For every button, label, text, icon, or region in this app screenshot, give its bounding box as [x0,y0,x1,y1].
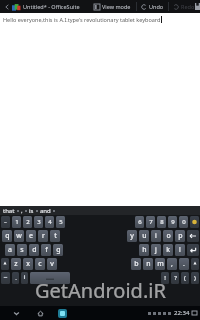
button[interactable]: e [26,230,36,242]
button[interactable]: z [11,258,21,270]
staticText: 8 [160,218,164,226]
staticText: j [155,245,157,255]
staticText: . [15,274,17,282]
button[interactable]: 3 [34,216,43,228]
staticText: ~ [4,219,7,226]
button[interactable]: u [139,230,149,242]
button[interactable]: 9 [168,216,177,228]
button[interactable]: s [17,244,27,256]
button[interactable]: t [50,230,60,242]
button[interactable]: r [38,230,48,242]
button[interactable]: . [179,258,189,270]
button[interactable]: Undo [141,3,164,10]
button[interactable]: y [127,230,137,242]
button[interactable]: 2 [23,216,32,228]
button[interactable]: Save [195,1,200,12]
staticText: ! [164,274,166,282]
staticText: , [21,207,23,215]
button[interactable]: o [163,230,173,242]
staticText: b [134,259,139,269]
button[interactable]: 4 [45,216,54,228]
staticText: 6 [138,218,142,226]
button[interactable]: g [53,244,63,256]
button[interactable]: ~ [1,216,10,228]
button[interactable]: m [155,258,165,270]
button[interactable]: and [40,207,51,215]
button[interactable]: 6 [135,216,144,228]
staticText: v [50,259,54,269]
button[interactable]: 1 [12,216,21,228]
button[interactable]: ? [171,272,179,284]
button[interactable]: is [29,207,34,215]
button[interactable]: . [12,272,19,284]
button[interactable]: d [29,244,39,256]
staticText: Hello everyone,this is A.I.type's revolu… [3,16,161,23]
staticText: , [171,259,173,269]
button[interactable]: l [175,244,185,256]
button[interactable]: ( [181,272,189,284]
button[interactable]: w [14,230,24,242]
button[interactable]: b [131,258,141,270]
button[interactable]: ! [161,272,169,284]
button[interactable]: x [23,258,33,270]
staticText: q [5,231,10,241]
staticText: Untitled* - OfficeSuite [23,3,80,10]
button[interactable]: k [163,244,173,256]
button[interactable]: , [21,207,23,215]
button[interactable]: Back [10,307,22,319]
button[interactable]: Voice input [21,272,28,284]
button[interactable]: a [5,244,15,256]
button[interactable]: Redo [173,3,195,10]
button[interactable]: Home [34,307,46,319]
staticText: n [146,259,151,269]
button[interactable]: v [47,258,57,270]
button[interactable]: Shift [1,258,9,270]
button[interactable]: j [151,244,161,256]
button[interactable]: Settings [190,216,199,228]
button[interactable]: Shift [191,258,199,270]
button[interactable]: Enter [187,244,199,256]
button[interactable]: c [35,258,45,270]
button[interactable]: Symbols [1,272,10,284]
staticText: ? [174,274,177,282]
button[interactable]: h [139,244,149,256]
staticText: t [54,231,57,241]
button[interactable]: q [2,230,12,242]
staticText: w [16,231,22,241]
staticText: 9 [171,218,175,226]
staticText: x [26,259,30,269]
button[interactable]: 8 [157,216,166,228]
staticText: d [32,245,37,255]
button[interactable]: that [3,207,15,215]
staticText: . [183,259,185,269]
staticText: Undo [149,3,164,10]
button[interactable]: 0 [179,216,188,228]
button[interactable]: 7 [146,216,155,228]
staticText: and [40,207,51,215]
button[interactable] [11,2,21,12]
staticText: p [178,231,183,241]
button[interactable]: p [175,230,185,242]
staticText: that [3,207,15,215]
button[interactable]: View mode [94,3,131,10]
staticText: 0 [182,218,186,226]
staticText: u [142,231,147,241]
button[interactable]: ) [191,272,199,284]
staticText: c [38,259,42,269]
button[interactable] [30,272,70,284]
button[interactable]: i [151,230,161,242]
staticText: s [20,245,24,255]
button[interactable]: 5 [56,216,65,228]
staticText: GetAndroid.iR [35,277,166,304]
button[interactable]: n [143,258,153,270]
button[interactable]: Recent apps [56,307,69,320]
staticText: m [157,259,164,269]
button[interactable]: f [41,244,51,256]
staticText: k [166,245,170,255]
staticText: 2 [26,218,30,226]
staticText: 5 [59,218,63,226]
button[interactable]: Back [2,2,11,11]
button[interactable]: Backspace [187,230,199,242]
button[interactable]: , [167,258,177,270]
button[interactable]: Untitled* - OfficeSuite [23,3,80,10]
